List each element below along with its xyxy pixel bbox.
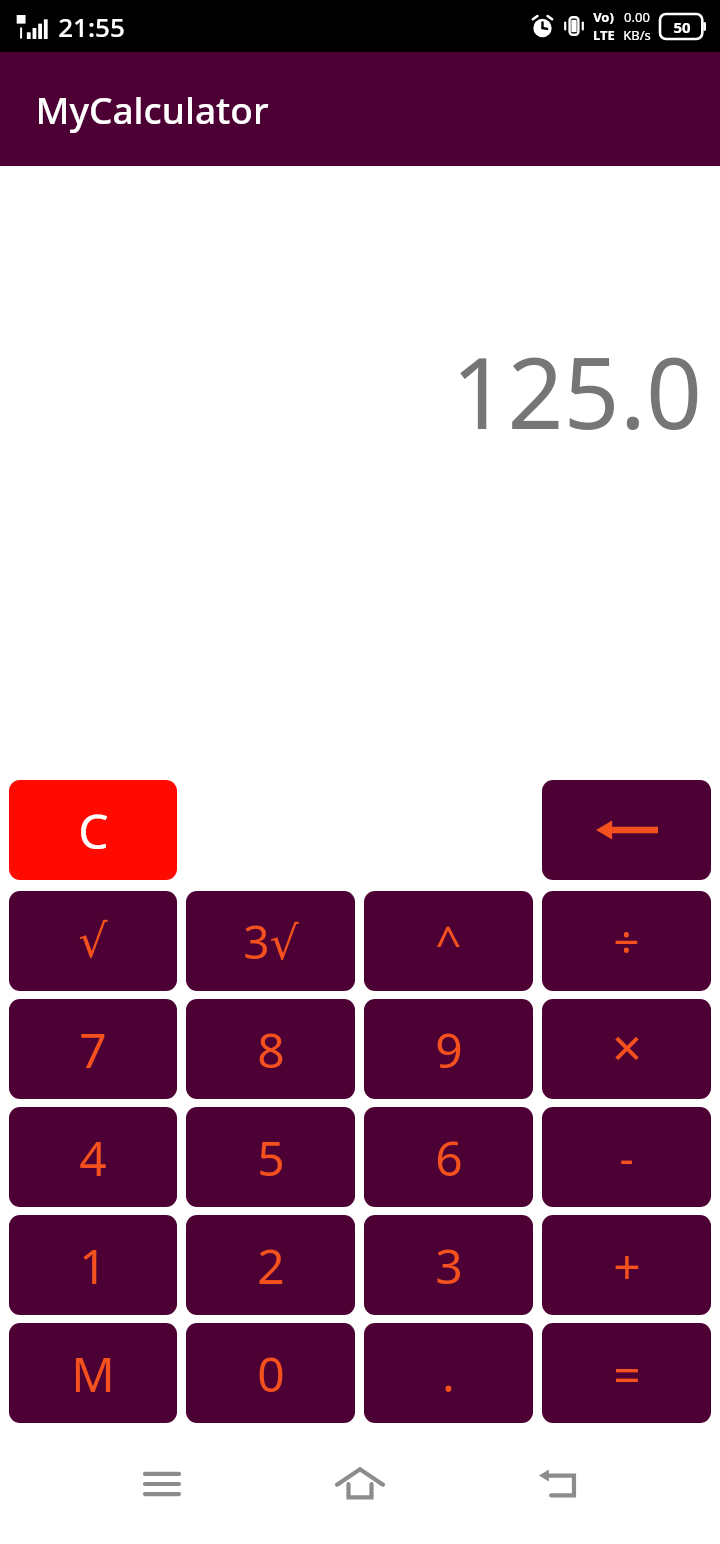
staticText: ^: [435, 910, 462, 973]
button[interactable]: 6: [364, 1107, 533, 1207]
button[interactable]: Home: [324, 1448, 396, 1520]
staticText: 1: [79, 1233, 107, 1298]
button[interactable]: 1: [9, 1215, 177, 1315]
staticText: 3√: [243, 910, 299, 973]
button[interactable]: =: [542, 1323, 711, 1423]
button[interactable]: Backspace: [542, 780, 711, 880]
button[interactable]: 3√: [186, 891, 355, 991]
staticText: KB/s: [623, 26, 651, 44]
button[interactable]: 9: [364, 999, 533, 1099]
staticText: 4: [79, 1125, 107, 1190]
staticText: M: [71, 1341, 115, 1406]
staticText: 21:55: [58, 9, 125, 44]
staticText: C: [78, 798, 109, 863]
staticText: .: [442, 1341, 455, 1406]
staticText: 50: [673, 17, 691, 37]
staticText: Vo): [593, 8, 614, 26]
staticText: ÷: [613, 910, 640, 973]
button[interactable]: Recent apps: [126, 1448, 198, 1520]
staticText: 6: [435, 1125, 463, 1190]
button[interactable]: +: [542, 1215, 711, 1315]
staticText: 2: [257, 1233, 285, 1298]
staticText: +: [613, 1233, 641, 1298]
button[interactable]: .: [364, 1323, 533, 1423]
staticText: =: [613, 1341, 641, 1406]
button[interactable]: ÷: [542, 891, 711, 991]
staticText: 9: [435, 1017, 463, 1082]
staticText: 125.0: [451, 324, 702, 457]
button[interactable]: ✕: [542, 999, 711, 1099]
staticText: √: [78, 914, 108, 968]
staticText: 8: [257, 1017, 285, 1082]
button[interactable]: C: [9, 780, 177, 880]
button[interactable]: ^: [364, 891, 533, 991]
button[interactable]: 3: [364, 1215, 533, 1315]
button[interactable]: 0: [186, 1323, 355, 1423]
button[interactable]: 8: [186, 999, 355, 1099]
button[interactable]: Back: [522, 1448, 594, 1520]
button[interactable]: -: [542, 1107, 711, 1207]
staticText: 0: [257, 1341, 285, 1406]
staticText: 0.00: [624, 8, 650, 26]
staticText: 5: [257, 1125, 285, 1190]
button[interactable]: M: [9, 1323, 177, 1423]
button[interactable]: 7: [9, 999, 177, 1099]
staticText: -: [619, 1127, 634, 1187]
staticText: MyCalculator: [35, 84, 269, 134]
staticText: ✕: [610, 1026, 644, 1073]
staticText: 7: [79, 1017, 107, 1082]
button[interactable]: 4: [9, 1107, 177, 1207]
button[interactable]: √: [9, 891, 177, 991]
button[interactable]: 2: [186, 1215, 355, 1315]
staticText: LTE: [593, 26, 615, 44]
staticText: 3: [435, 1233, 463, 1298]
button[interactable]: 5: [186, 1107, 355, 1207]
